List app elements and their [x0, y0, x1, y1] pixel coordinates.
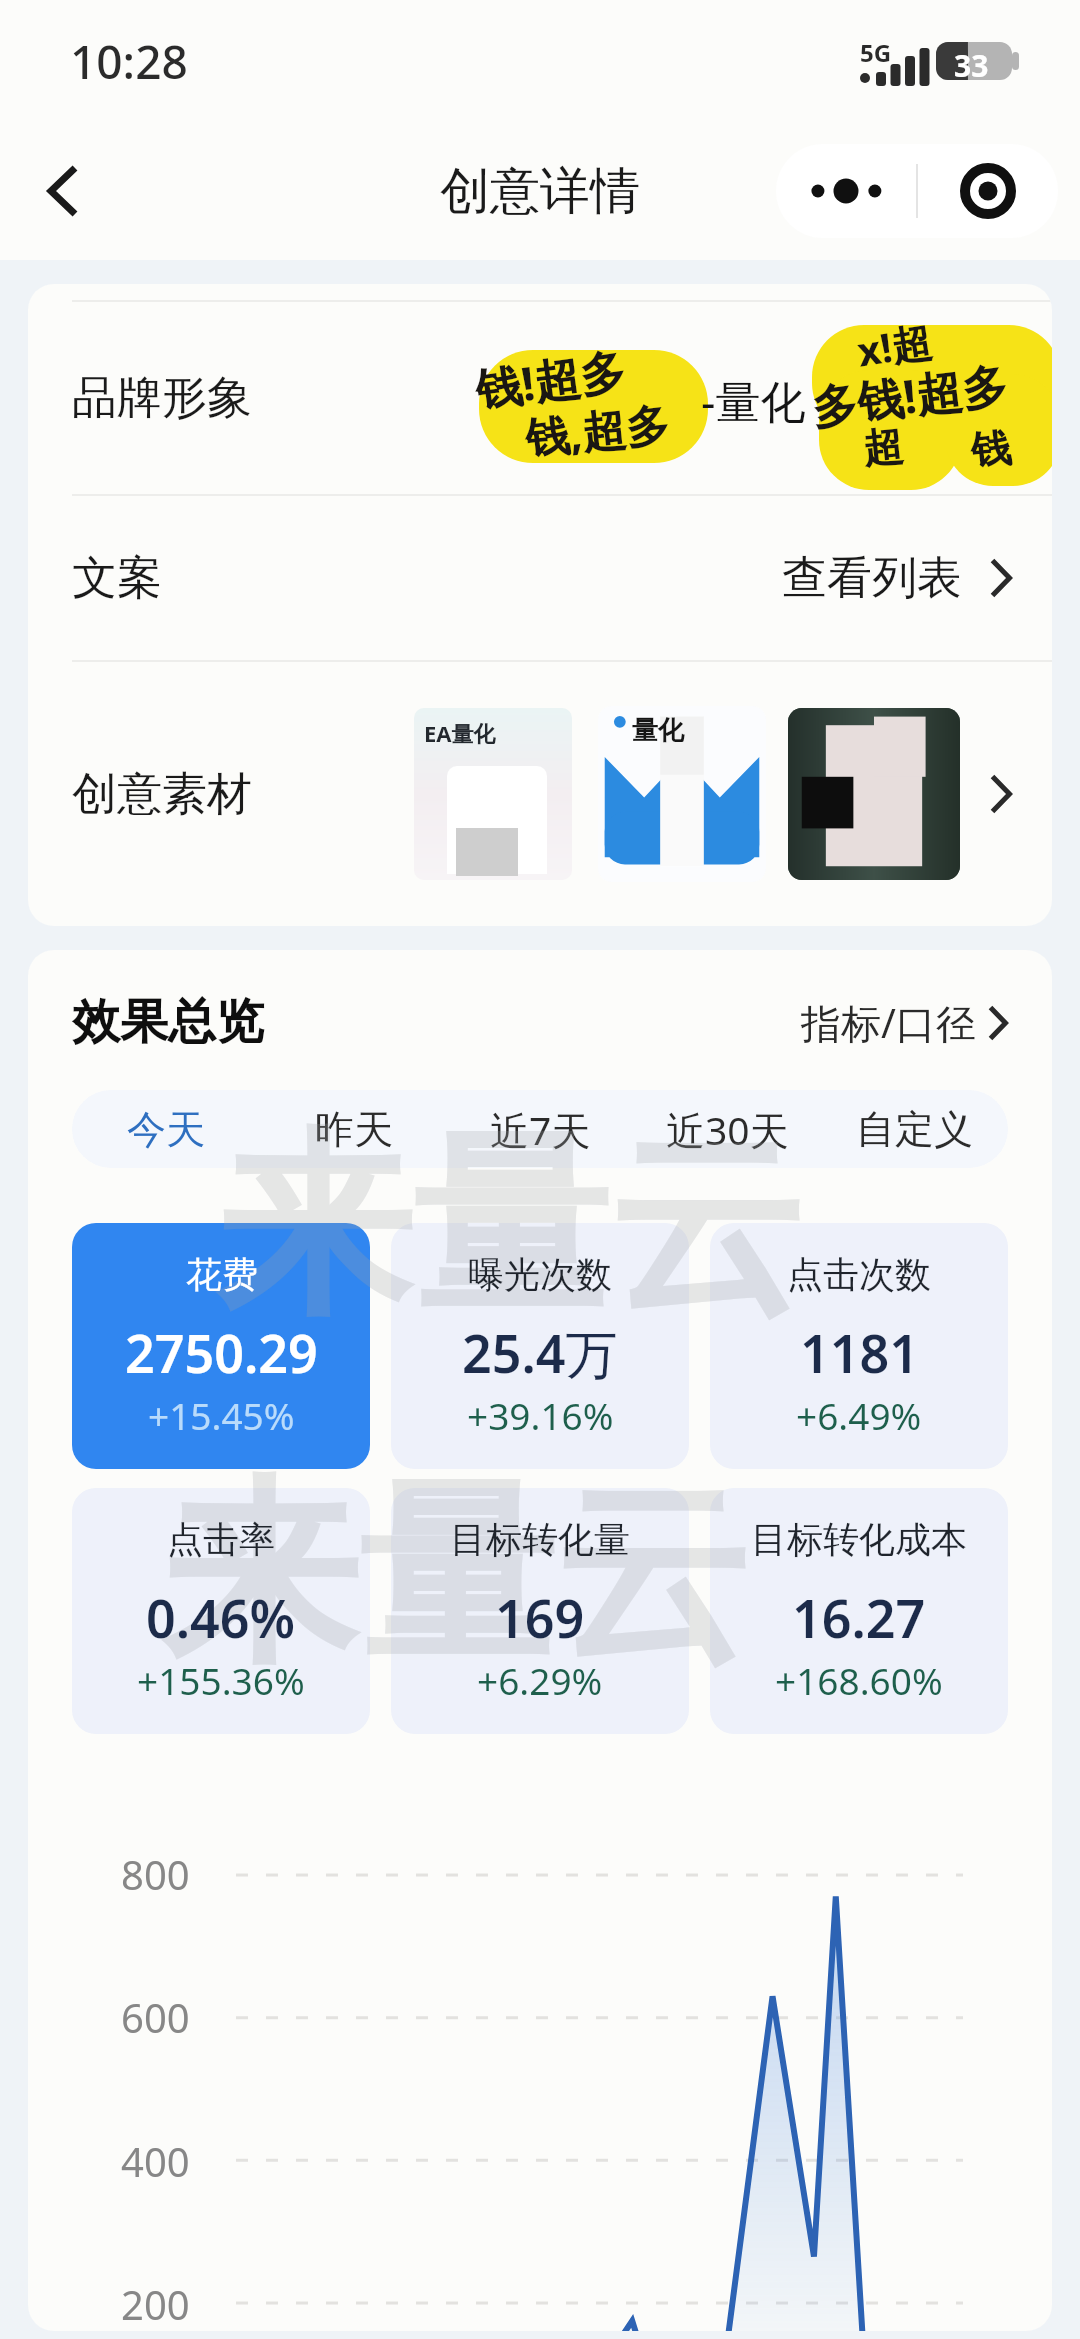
- button[interactable]: 目标转化量: [391, 1488, 689, 1734]
- button[interactable]: 昨天: [260, 1090, 447, 1168]
- button[interactable]: More options: [776, 144, 916, 238]
- staticText: 200: [121, 2277, 190, 2331]
- staticText: 指标/口径: [801, 995, 976, 1050]
- staticText: 600: [121, 1990, 190, 2044]
- staticText: 近7天: [490, 1103, 591, 1156]
- staticText: 效果总览: [72, 992, 264, 1052]
- staticText: 800: [121, 1847, 190, 1901]
- staticText: 25.4万: [462, 1317, 618, 1388]
- staticText: x!超: [853, 312, 936, 379]
- button[interactable]: 品牌形象: [28, 302, 1052, 494]
- button[interactable]: 自定义: [821, 1090, 1008, 1168]
- staticText: 曝光次数: [468, 1252, 612, 1297]
- staticText: 品牌形象: [72, 370, 252, 427]
- staticText: 目标转化成本: [751, 1517, 967, 1562]
- button[interactable]: 近30天: [634, 1090, 821, 1168]
- button[interactable]: Back: [20, 148, 106, 234]
- staticText: 创意详情: [440, 160, 640, 223]
- staticText: 自定义: [856, 1105, 973, 1154]
- button[interactable]: 指标/口径: [801, 995, 1008, 1050]
- staticText: +168.60%: [775, 1655, 943, 1705]
- staticText: 超: [860, 420, 905, 474]
- staticText: 0.46%: [146, 1582, 296, 1653]
- staticText: 1181: [800, 1317, 919, 1388]
- staticText: +39.16%: [467, 1390, 614, 1440]
- staticText: 33: [954, 45, 989, 86]
- button[interactable]: 点击率: [72, 1488, 370, 1734]
- staticText: 文案: [72, 550, 162, 607]
- staticText: 钱,超多: [522, 393, 673, 467]
- staticText: 点击率: [167, 1517, 275, 1562]
- button[interactable]: 创意素材: [28, 662, 1052, 926]
- staticText: 近30天: [666, 1103, 789, 1156]
- staticText: 目标转化量: [450, 1517, 630, 1562]
- button[interactable]: 近7天: [447, 1090, 634, 1168]
- button[interactable]: 今天: [72, 1090, 260, 1168]
- staticText: 10:28: [70, 30, 188, 93]
- staticText: +6.29%: [477, 1655, 603, 1705]
- staticText: +15.45%: [148, 1390, 295, 1440]
- staticText: EA量化: [424, 718, 496, 748]
- staticText: 花费: [186, 1252, 258, 1297]
- button[interactable]: 目标转化成本: [710, 1488, 1008, 1734]
- button[interactable]: 花费: [72, 1223, 370, 1469]
- staticText: 16.27: [792, 1582, 926, 1653]
- staticText: 查看列表: [782, 550, 962, 607]
- staticText: 169: [495, 1582, 585, 1653]
- staticText: 钱!超多: [471, 338, 630, 421]
- staticText: 量化: [632, 714, 684, 747]
- staticText: 多钱!超多: [808, 352, 1011, 439]
- staticText: 来量云: [216, 1104, 804, 1351]
- button[interactable]: 文案: [28, 496, 1052, 660]
- staticText: 2750.29: [125, 1317, 318, 1388]
- button[interactable]: Close mini program: [918, 144, 1058, 238]
- staticText: 5G: [860, 36, 892, 69]
- staticText: 400: [121, 2134, 190, 2188]
- staticText: -量化: [701, 370, 806, 431]
- button[interactable]: 曝光次数: [391, 1223, 689, 1469]
- staticText: 来量云: [162, 1452, 750, 1699]
- button[interactable]: 点击次数: [710, 1223, 1008, 1469]
- staticText: 点击次数: [787, 1252, 931, 1297]
- staticText: 创意素材: [72, 766, 252, 823]
- staticText: 今天: [127, 1105, 205, 1154]
- staticText: +6.49%: [796, 1390, 922, 1440]
- staticText: 昨天: [315, 1105, 393, 1154]
- staticText: 钱: [968, 422, 1013, 476]
- staticText: +155.36%: [137, 1655, 305, 1705]
